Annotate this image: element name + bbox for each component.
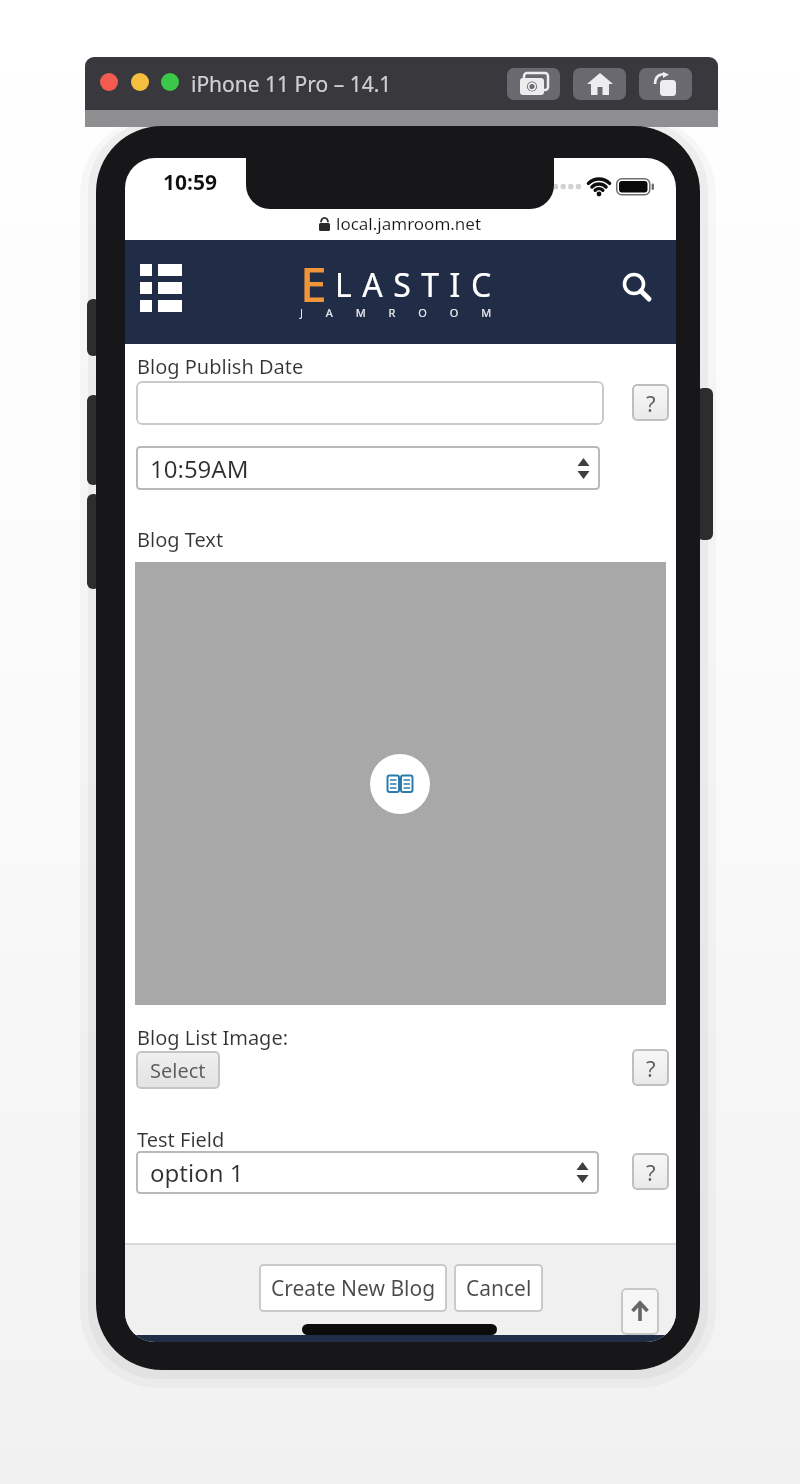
button[interactable] (131, 73, 149, 91)
staticText: 10:59AM (150, 452, 249, 485)
button[interactable]: option 1 (136, 1151, 599, 1194)
button[interactable]: 10:59AM (136, 446, 600, 490)
button[interactable] (639, 68, 692, 100)
button[interactable] (370, 754, 430, 814)
staticText: Cancel (466, 1274, 532, 1303)
button[interactable] (623, 273, 653, 303)
staticText: Blog List Image: (137, 1024, 289, 1051)
button[interactable]: Select (136, 1051, 220, 1089)
button[interactable] (140, 264, 182, 312)
button[interactable] (100, 73, 118, 91)
button[interactable] (136, 381, 604, 425)
button[interactable] (573, 68, 626, 100)
button[interactable]: Create New Blog (259, 1264, 447, 1312)
staticText: J A M R O O M (300, 305, 502, 320)
staticText: Test Field (137, 1126, 225, 1153)
staticText: E (300, 251, 327, 316)
staticText: ? (646, 1157, 656, 1187)
button[interactable]: Cancel (454, 1264, 543, 1312)
staticText: Blog Text (137, 526, 224, 553)
staticText: ? (646, 1053, 656, 1083)
button[interactable] (621, 1288, 659, 1335)
staticText: local.jamroom.net (336, 212, 482, 235)
button[interactable] (507, 68, 560, 100)
staticText: ? (646, 388, 656, 418)
staticText: option 1 (150, 1156, 244, 1189)
button[interactable] (161, 73, 179, 91)
staticText: iPhone 11 Pro – 14.1 (191, 70, 392, 99)
staticText: Select (150, 1057, 206, 1084)
staticText: LASTIC (335, 263, 502, 307)
button[interactable]: ? (632, 1049, 669, 1086)
button[interactable]: ? (632, 384, 669, 421)
staticText: 10:59 (163, 168, 217, 197)
staticText: Blog Publish Date (137, 353, 304, 380)
staticText: Create New Blog (271, 1274, 436, 1303)
button[interactable]: ? (632, 1153, 669, 1190)
